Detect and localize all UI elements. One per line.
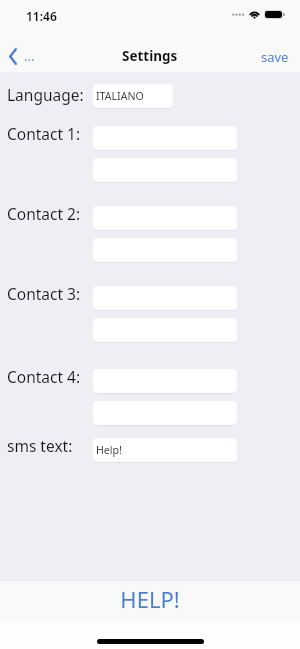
staticText: Language: [7, 84, 84, 105]
staticText: Contact 2: [7, 203, 81, 224]
staticText: save [261, 48, 289, 66]
button[interactable]: ITALIANO [93, 84, 173, 108]
staticText: Help! [96, 443, 122, 457]
other: Wi-Fi [249, 9, 260, 20]
button[interactable]: Back [0, 41, 43, 69]
button[interactable]: save [253, 42, 300, 69]
staticText: Contact 4: [7, 366, 81, 387]
other: Cellular signal [232, 9, 243, 20]
staticText: ... [24, 47, 35, 65]
staticText: HELP! [120, 584, 180, 614]
button[interactable]: Help! [93, 438, 237, 462]
staticText: 11:46 [26, 8, 57, 24]
other: Battery [265, 9, 285, 20]
staticText: Contact 1: [7, 123, 81, 144]
staticText: ITALIANO [96, 89, 144, 103]
staticText: sms text: [7, 435, 73, 456]
staticText: Settings [122, 47, 178, 65]
button[interactable]: HELP! [90, 581, 210, 622]
staticText: Contact 3: [7, 283, 81, 304]
